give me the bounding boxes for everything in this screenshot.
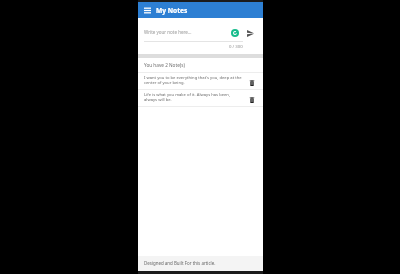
button[interactable]: I want you to be everything that's you, … (138, 73, 263, 89)
staticText: My Notes (156, 6, 188, 15)
button[interactable]: Reset (231, 29, 239, 37)
button[interactable]: Send (245, 28, 256, 39)
staticText: Life is what you make of it. Always has … (144, 92, 244, 102)
staticText: I want you to be everything that's you, … (144, 75, 244, 85)
staticText: You have 2 Note(s) (144, 62, 185, 68)
staticText: 0 / 300 (229, 43, 243, 48)
button[interactable]: Delete note (247, 78, 256, 87)
staticText: Designed and Built For this article. (144, 260, 216, 266)
button[interactable]: Delete note (247, 95, 256, 104)
button[interactable]: Menu (143, 6, 152, 15)
staticText: Write your note here... (144, 29, 192, 35)
button[interactable]: Life is what you make of it. Always has … (138, 90, 263, 106)
